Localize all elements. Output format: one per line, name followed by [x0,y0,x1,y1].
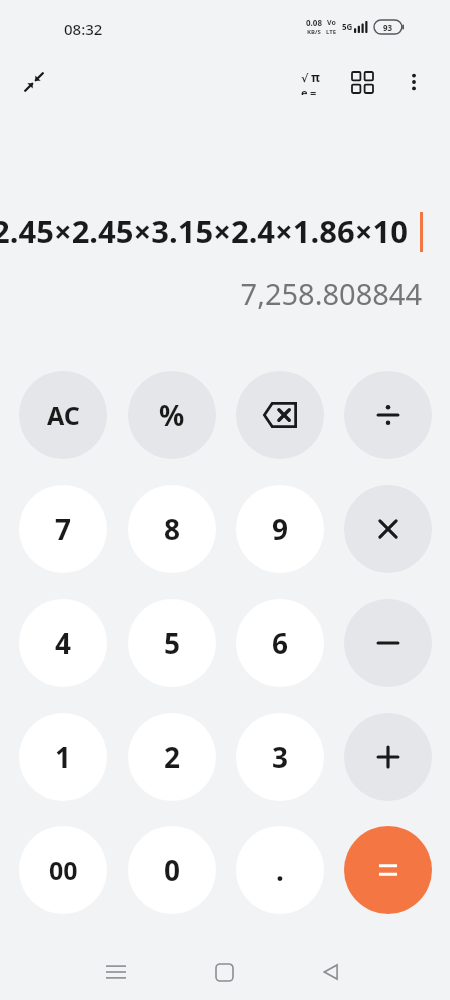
staticText: 9 [272,510,289,548]
staticText: = [310,85,317,95]
button[interactable]: 8 [128,485,216,573]
staticText: 1 [55,738,72,776]
staticText: 8 [164,510,181,548]
button[interactable]: More options [392,60,436,104]
button[interactable]: Scientific mode [288,60,332,104]
button[interactable]: 00 [19,826,107,914]
button[interactable]: 3 [236,713,324,801]
staticText: √ [301,72,309,85]
staticText: 0 [164,851,181,889]
staticText: . [276,851,284,889]
staticText: KB/S [307,28,321,36]
button[interactable]: Home [202,950,246,994]
button[interactable]: 5 [128,599,216,687]
button[interactable]: Equals [344,826,432,914]
button[interactable]: Divide [344,371,432,459]
staticText: 08:32 [64,19,103,39]
button[interactable]: 4 [19,599,107,687]
staticText: 4 [55,624,72,662]
button[interactable]: 9 [236,485,324,573]
button[interactable]: Backspace [236,371,324,459]
button[interactable]: Back [309,950,353,994]
staticText: AC [47,398,80,432]
button[interactable]: Recents [94,950,138,994]
staticText: LTE [326,28,337,36]
button[interactable]: Add [344,713,432,801]
staticText: 7 [55,510,72,548]
staticText: 7,258.808844 [0,274,422,313]
button[interactable]: Subtract [344,599,432,687]
button[interactable]: . [236,826,324,914]
staticText: 5 [164,624,181,662]
staticText: π [311,69,320,85]
button[interactable]: Collapse [12,60,56,104]
button[interactable]: Multiply [344,485,432,573]
staticText: 93 [383,22,393,33]
staticText: 5G [342,21,353,32]
staticText: e [301,85,308,95]
button[interactable]: 7 [19,485,107,573]
button[interactable]: 1 [19,713,107,801]
staticText: % [159,396,185,434]
staticText: Vo [327,18,336,28]
staticText: 00 [49,853,78,887]
staticText: 2.45×2.45×3.15×2.4×1.86×10 [0,210,408,252]
staticText: 6 [272,624,289,662]
button[interactable]: AC [19,371,107,459]
button[interactable]: 2 [128,713,216,801]
staticText: 0.08 [306,17,322,28]
button[interactable]: 6 [236,599,324,687]
button[interactable]: 0 [128,826,216,914]
staticText: 2 [164,738,181,776]
staticText: 3 [272,738,289,776]
button[interactable]: Converters [340,60,384,104]
button[interactable]: % [128,371,216,459]
